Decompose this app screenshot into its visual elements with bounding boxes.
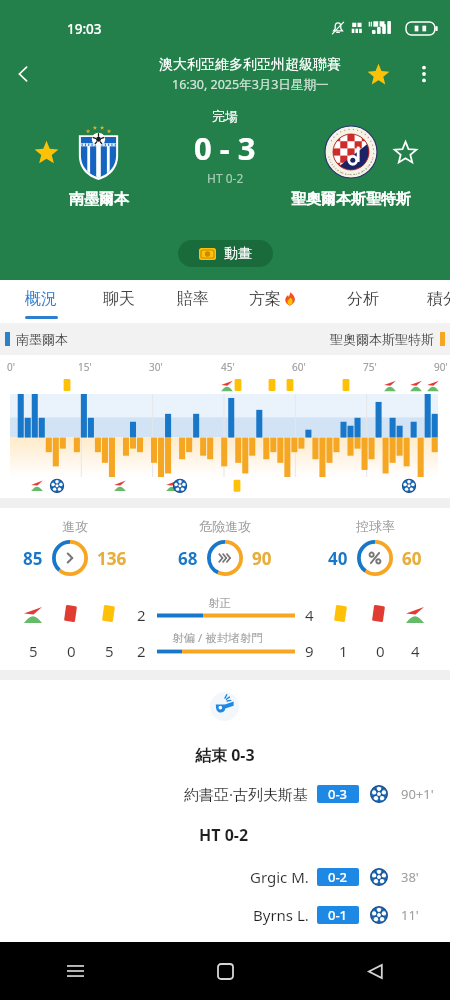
staticText: 完場 [212,108,238,124]
staticText: 90 [252,547,272,570]
button[interactable]: Favourite away team [392,139,418,165]
staticText: 聖奧爾本斯聖特斯 [330,331,434,347]
staticText: 68 [178,547,198,570]
staticText: 0 [376,641,385,661]
staticText: 136 [97,547,127,570]
button[interactable]: 聊天 [82,280,155,323]
button[interactable]: 約書亞·古列夫斯基 [0,782,450,806]
button[interactable]: 分析 [320,280,406,323]
button[interactable]: More options [405,55,443,93]
button[interactable]: 方案 [230,280,315,323]
staticText: 5 [105,641,114,661]
staticText: 19:03 [67,20,102,38]
staticText: 15' [78,360,92,374]
button[interactable]: Byrns L. [0,903,450,927]
button[interactable]: Home [150,942,300,1000]
staticText: HT 0-2 [207,170,244,186]
button[interactable]: 概況 [0,280,82,323]
staticText: 2 [137,641,146,661]
button[interactable]: Back [2,53,44,95]
button[interactable]: 動畫 [178,240,273,267]
staticText: HT 0-2 [199,824,249,846]
staticText: 賠率 [177,289,209,309]
staticText: 分析 [347,289,379,309]
staticText: 60 [402,547,422,570]
staticText: 方案 [249,289,281,309]
staticText: 南墨爾本 [16,331,68,347]
staticText: 90' [434,360,448,374]
staticText: 控球率 [356,518,395,534]
staticText: 聊天 [103,289,135,309]
staticText: 16:30, 2025年3月3日星期一 [172,76,329,93]
staticText: 60' [292,360,306,374]
button[interactable]: 積分 [406,280,450,323]
staticText: 概況 [25,289,57,309]
staticText: 射正 [208,596,231,610]
staticText: 40 [328,547,348,570]
staticText: 30' [149,360,163,374]
staticText: 38' [401,868,419,886]
staticText: 11' [401,906,419,924]
button[interactable]: Recent apps [0,942,150,1000]
staticText: 45' [221,360,235,374]
button[interactable]: Favourite [358,54,398,94]
button[interactable]: Back [300,942,450,1000]
staticText: 0-2 [328,868,348,886]
button[interactable]: 賠率 [155,280,230,323]
staticText: 約書亞·古列夫斯基 [184,784,309,804]
staticText: Grgic M. [250,867,309,887]
staticText: 2 [137,605,146,625]
staticText: 1 [339,641,348,661]
staticText: 85 [23,547,43,570]
staticText: 5 [29,641,38,661]
staticText: 南墨爾本 [69,190,129,209]
staticText: 0 - 3 [194,127,256,169]
staticText: 澳大利亞維多利亞州超級聯賽 [159,56,341,74]
staticText: 90+1' [401,785,434,803]
staticText: 0' [7,360,15,374]
staticText: 75' [363,360,377,374]
staticText: 積分 [427,289,450,309]
button[interactable]: Favourite home team [33,139,59,165]
staticText: 0 [67,641,76,661]
staticText: 危險進攻 [199,518,251,534]
staticText: 9 [305,641,314,661]
staticText: 0-1 [328,906,348,924]
staticText: 動畫 [224,245,252,263]
button[interactable]: Grgic M. [0,865,450,889]
staticText: 4 [411,641,420,661]
staticText: 聖奧爾本斯聖特斯 [291,190,411,209]
staticText: 射偏 / 被封堵射門 [172,630,263,646]
staticText: 4 [305,605,314,625]
staticText: 0-3 [328,785,348,803]
staticText: 結束 0-3 [195,744,255,766]
staticText: Byrns L. [253,905,309,925]
staticText: 進攻 [62,518,88,534]
